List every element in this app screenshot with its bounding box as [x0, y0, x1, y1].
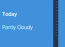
staticText: Partly Cloudy: [2, 24, 33, 31]
staticText: Today: [2, 10, 17, 18]
